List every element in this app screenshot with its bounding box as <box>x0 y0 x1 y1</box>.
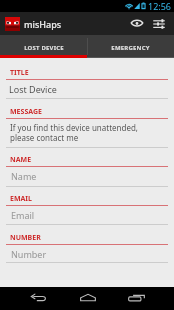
button[interactable]: Back <box>14 286 63 309</box>
button[interactable]: Name <box>6 167 168 187</box>
staticText: EMAIL <box>10 194 33 204</box>
button[interactable]: If you find this device unattended, plea… <box>6 119 168 148</box>
staticText: NAME <box>10 155 32 165</box>
staticText: If you find this device unattended, plea… <box>10 122 138 143</box>
staticText: EMERGENCY <box>111 44 150 52</box>
button[interactable]: LOST DEVICE <box>0 35 87 58</box>
button[interactable]: Recents <box>112 286 161 309</box>
staticText: TITLE <box>10 68 29 78</box>
staticText: LOST DEVICE <box>24 44 64 52</box>
button[interactable]: Lost Device <box>6 80 168 99</box>
staticText: Name <box>11 170 37 182</box>
button[interactable]: Email <box>6 206 168 225</box>
staticText: NUMBER <box>10 233 41 243</box>
staticText: 12:56 <box>148 0 172 12</box>
button[interactable]: Home <box>63 286 112 309</box>
staticText: Email <box>11 209 35 221</box>
button[interactable]: Number <box>6 245 168 263</box>
staticText: misHaps <box>24 18 62 30</box>
button[interactable]: Settings <box>148 12 170 35</box>
staticText: Number <box>11 248 47 260</box>
button[interactable]: EMERGENCY <box>87 35 174 58</box>
staticText: MESSAGE <box>10 107 42 117</box>
button[interactable]: Preview <box>126 12 148 35</box>
staticText: Lost Device <box>9 83 57 95</box>
